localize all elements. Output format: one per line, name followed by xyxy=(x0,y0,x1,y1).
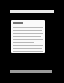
button[interactable] xyxy=(11,20,45,53)
